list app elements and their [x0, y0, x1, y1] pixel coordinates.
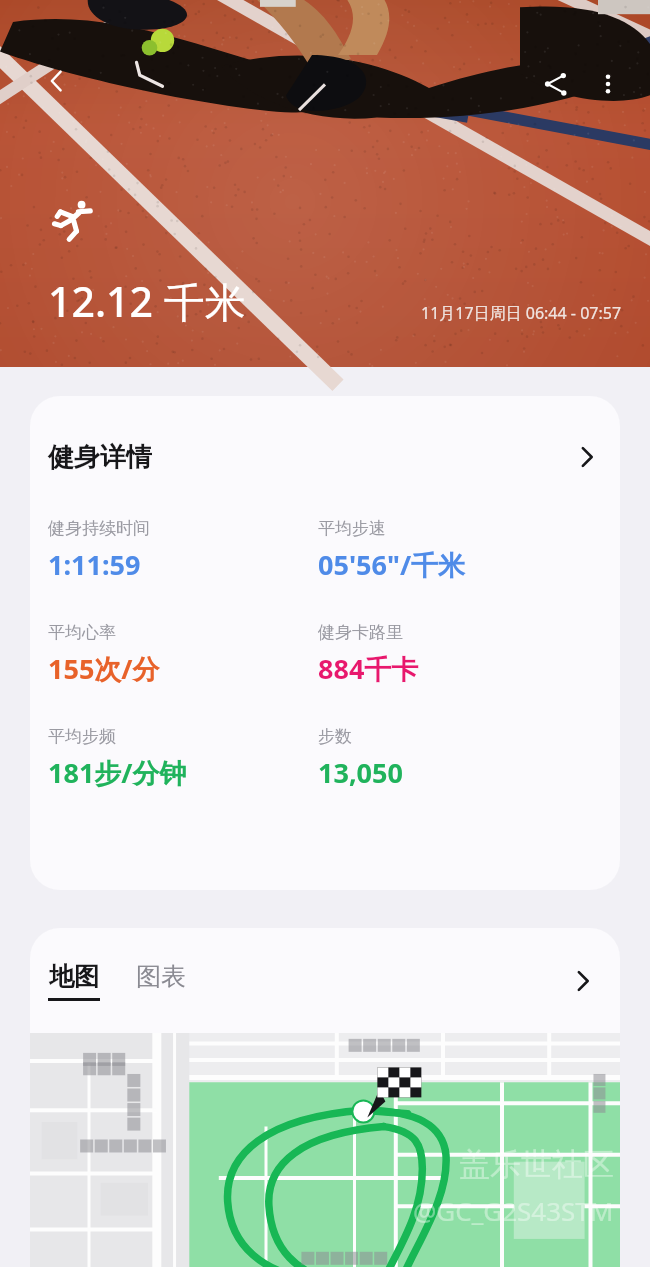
- staticText: 地图: [49, 961, 99, 992]
- button[interactable]: Open map: [566, 964, 600, 998]
- staticText: 平均步频: [48, 726, 116, 747]
- button[interactable]: 步数: [318, 726, 610, 791]
- staticText: 健身持续时间: [48, 518, 150, 539]
- staticText: 平均步速: [318, 518, 386, 539]
- staticText: 健身卡路里: [318, 622, 403, 643]
- button[interactable]: 盖乐世社区: [30, 1033, 620, 1267]
- staticText: 1:11:59: [48, 546, 141, 583]
- button[interactable]: 图表: [136, 961, 186, 1001]
- staticText: 图表: [136, 961, 186, 992]
- staticText: 155次/分: [48, 650, 160, 687]
- staticText: 健身详情: [48, 441, 152, 474]
- button[interactable]: 健身详情: [30, 396, 620, 518]
- button[interactable]: Share: [530, 58, 582, 110]
- button[interactable]: Back: [34, 58, 80, 104]
- staticText: 步数: [318, 726, 352, 747]
- button[interactable]: 平均心率: [48, 622, 318, 687]
- staticText: 盖乐世社区: [459, 1145, 614, 1184]
- staticText: 05'56"/千米: [318, 546, 466, 583]
- staticText: @GC_G2S43STM: [413, 1193, 614, 1228]
- staticText: 181步/分钟: [48, 754, 187, 791]
- button[interactable]: 平均步速: [318, 518, 610, 583]
- button[interactable]: 健身卡路里: [318, 622, 610, 687]
- button[interactable]: More options: [582, 58, 634, 110]
- staticText: 11月17日周日 06:44 - 07:57: [421, 302, 622, 324]
- staticText: 平均心率: [48, 622, 116, 643]
- staticText: 13,050: [318, 754, 403, 791]
- button[interactable]: 平均步频: [48, 726, 318, 791]
- staticText: 12.12 千米: [48, 273, 246, 329]
- button[interactable]: 健身持续时间: [48, 518, 318, 583]
- staticText: 884千卡: [318, 650, 419, 687]
- button[interactable]: 地图: [48, 961, 100, 1001]
